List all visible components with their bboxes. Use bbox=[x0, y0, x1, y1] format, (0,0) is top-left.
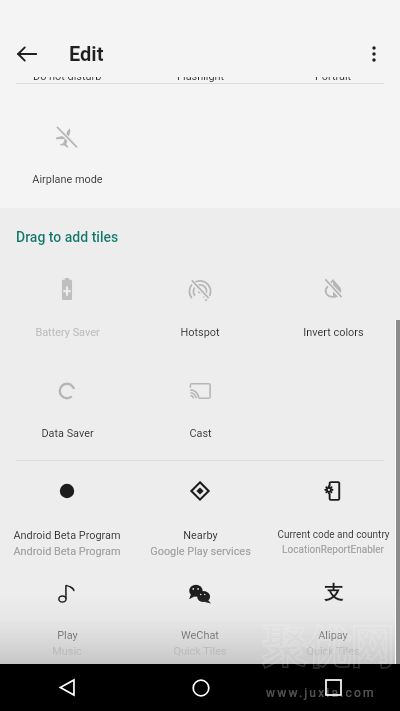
button[interactable]: Current code and country bbox=[258, 475, 400, 556]
button[interactable]: Home bbox=[134, 664, 267, 711]
button[interactable]: Play bbox=[0, 577, 142, 658]
staticText: Play bbox=[57, 629, 78, 642]
button[interactable]: 支 bbox=[258, 577, 400, 658]
staticText: Google Play services bbox=[150, 545, 251, 558]
staticText: Nearby bbox=[183, 529, 218, 542]
button[interactable]: Hotspot bbox=[125, 273, 275, 339]
staticText: Edit bbox=[69, 42, 104, 65]
button[interactable]: Battery Saver bbox=[0, 273, 142, 339]
button[interactable]: WeChat bbox=[125, 577, 275, 658]
button[interactable]: Cast bbox=[125, 375, 275, 440]
button[interactable]: Invert colors bbox=[258, 273, 400, 339]
staticText: Alipay bbox=[318, 629, 348, 642]
staticText: 聚优网 bbox=[262, 620, 394, 675]
staticText: Data Saver bbox=[41, 427, 94, 440]
staticText: Quick Tiles bbox=[173, 645, 227, 658]
button[interactable]: Android Beta Program bbox=[0, 475, 142, 558]
staticText: Music bbox=[52, 645, 82, 658]
staticText: Current code and country bbox=[277, 529, 390, 541]
staticText: Quick Tiles bbox=[306, 645, 360, 658]
staticText: Flashlight bbox=[177, 70, 225, 83]
staticText: Android Beta Program bbox=[13, 545, 121, 558]
staticText: Cast bbox=[189, 427, 212, 440]
staticText: Android Beta Program bbox=[13, 529, 121, 542]
button[interactable]: Back bbox=[3, 30, 51, 78]
staticText: Battery Saver bbox=[35, 326, 100, 339]
button[interactable]: Data Saver bbox=[0, 375, 142, 440]
button[interactable]: Recents bbox=[267, 664, 400, 711]
button[interactable]: More options bbox=[350, 30, 398, 78]
staticText: 支 bbox=[324, 581, 343, 605]
button[interactable]: Back bbox=[0, 664, 134, 711]
staticText: LocationReportEnabler bbox=[282, 544, 384, 556]
button[interactable]: Airplane mode bbox=[0, 121, 142, 186]
staticText: www.juxia.com bbox=[266, 686, 376, 700]
staticText: Portrait bbox=[315, 70, 352, 83]
staticText: WeChat bbox=[181, 629, 219, 642]
staticText: Do not disturb bbox=[33, 70, 102, 83]
staticText: Airplane mode bbox=[32, 173, 103, 186]
button[interactable]: Nearby bbox=[125, 475, 275, 558]
button[interactable]: Drag to add tiles bbox=[16, 229, 119, 245]
staticText: Invert colors bbox=[303, 326, 364, 339]
staticText: Hotspot bbox=[180, 326, 220, 339]
staticText: Drag to add tiles bbox=[16, 229, 119, 245]
